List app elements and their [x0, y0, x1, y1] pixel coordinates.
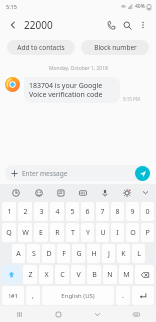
staticText: Q: [6, 228, 12, 238]
staticText: K: [121, 249, 126, 259]
staticText: Add to contacts: [17, 43, 65, 52]
button[interactable]: D: [42, 244, 55, 263]
button[interactable]: I: [111, 223, 124, 242]
button[interactable]: 5: [66, 202, 79, 221]
button[interactable]: !#1: [2, 286, 24, 305]
button[interactable]: Shift: [2, 265, 21, 284]
button[interactable]: W: [18, 223, 32, 242]
staticText: P: [145, 228, 150, 238]
staticText: O: [130, 228, 136, 238]
button[interactable]: U: [96, 223, 109, 242]
staticText: 6: [85, 207, 90, 217]
button[interactable]: Enter: [132, 286, 154, 305]
button[interactable]: Home: [39, 306, 78, 322]
staticText: 7: [100, 207, 105, 217]
button[interactable]: G: [72, 244, 85, 263]
button[interactable]: J: [102, 244, 115, 263]
button[interactable]: S: [27, 244, 40, 263]
button[interactable]: M: [119, 265, 133, 284]
button[interactable]: Back: [5, 17, 21, 33]
staticText: 2: [23, 207, 28, 217]
button[interactable]: E: [34, 223, 48, 242]
button[interactable]: 4: [50, 202, 64, 221]
button[interactable]: Add to contacts: [7, 40, 75, 55]
staticText: C: [60, 270, 65, 280]
button[interactable]: 22000: [24, 18, 103, 32]
staticText: 0: [145, 207, 150, 217]
staticText: T: [71, 228, 75, 238]
staticText: Z: [28, 270, 33, 280]
button[interactable]: Settings: [116, 184, 138, 201]
button[interactable]: More options: [135, 17, 151, 33]
button[interactable]: Stickers: [137, 168, 147, 178]
button[interactable]: 1: [2, 202, 16, 221]
staticText: 3: [39, 207, 44, 217]
staticText: 40%: [135, 3, 145, 10]
button[interactable]: Voice input: [94, 184, 116, 201]
button[interactable]: Back: [78, 306, 117, 322]
button[interactable]: T: [66, 223, 79, 242]
staticText: V: [76, 270, 81, 280]
button[interactable]: 2: [18, 202, 32, 221]
button[interactable]: Emoji: [27, 184, 50, 201]
staticText: H: [91, 249, 97, 259]
button[interactable]: Send: [135, 166, 150, 181]
button[interactable]: C: [55, 265, 69, 284]
button[interactable]: Recent: [4, 184, 27, 201]
staticText: E: [39, 228, 43, 238]
staticText: Y: [86, 228, 90, 238]
staticText: W: [22, 228, 29, 238]
staticText: 5:15 PM: [123, 96, 140, 102]
button[interactable]: X: [39, 265, 53, 284]
button[interactable]: Recents: [0, 306, 39, 322]
button[interactable]: .: [116, 286, 130, 305]
staticText: B: [92, 270, 97, 280]
button[interactable]: 7: [96, 202, 109, 221]
button[interactable]: K: [117, 244, 130, 263]
button[interactable]: Q: [2, 223, 16, 242]
button[interactable]: H: [87, 244, 100, 263]
button[interactable]: 6: [81, 202, 94, 221]
button[interactable]: B: [87, 265, 101, 284]
staticText: D: [46, 249, 52, 259]
button[interactable]: A: [12, 244, 25, 263]
button[interactable]: Y: [81, 223, 94, 242]
button[interactable]: Clipboard: [72, 184, 94, 201]
button[interactable]: 9: [126, 202, 139, 221]
button[interactable]: Collapse: [138, 184, 152, 201]
button[interactable]: N: [103, 265, 117, 284]
button[interactable]: Backspace: [135, 265, 154, 284]
button[interactable]: 0: [141, 202, 154, 221]
staticText: N: [107, 270, 113, 280]
button[interactable]: R: [50, 223, 64, 242]
button[interactable]: 183704 is your Google Voice verification…: [24, 77, 120, 103]
button[interactable]: Keyboard: [117, 306, 156, 322]
button[interactable]: P: [141, 223, 154, 242]
staticText: 183704 is your Google Voice verification…: [29, 81, 115, 99]
button[interactable]: Sticker: [50, 184, 72, 201]
staticText: Block number: [94, 43, 137, 52]
staticText: L: [137, 249, 141, 259]
staticText: 1: [7, 207, 12, 217]
button[interactable]: Block number: [81, 40, 149, 55]
button[interactable]: ,: [26, 286, 40, 305]
button[interactable]: L: [132, 244, 145, 263]
button[interactable]: O: [126, 223, 139, 242]
button[interactable]: F: [57, 244, 70, 263]
staticText: English (US): [61, 292, 95, 300]
staticText: 5:15: [6, 3, 17, 10]
button[interactable]: Z: [23, 265, 37, 284]
staticText: J: [108, 249, 110, 259]
button[interactable]: English (US): [42, 286, 114, 305]
staticText: X: [44, 270, 49, 280]
button[interactable]: 8: [111, 202, 124, 221]
staticText: 5: [70, 207, 75, 217]
button[interactable]: Add attachment: [5, 165, 151, 181]
button[interactable]: Add attachment: [9, 168, 19, 178]
button[interactable]: V: [71, 265, 85, 284]
button[interactable]: Search: [119, 17, 135, 33]
staticText: Enter message: [22, 169, 137, 178]
button[interactable]: Call: [103, 17, 119, 33]
button[interactable]: 3: [34, 202, 48, 221]
staticText: S: [32, 249, 36, 259]
